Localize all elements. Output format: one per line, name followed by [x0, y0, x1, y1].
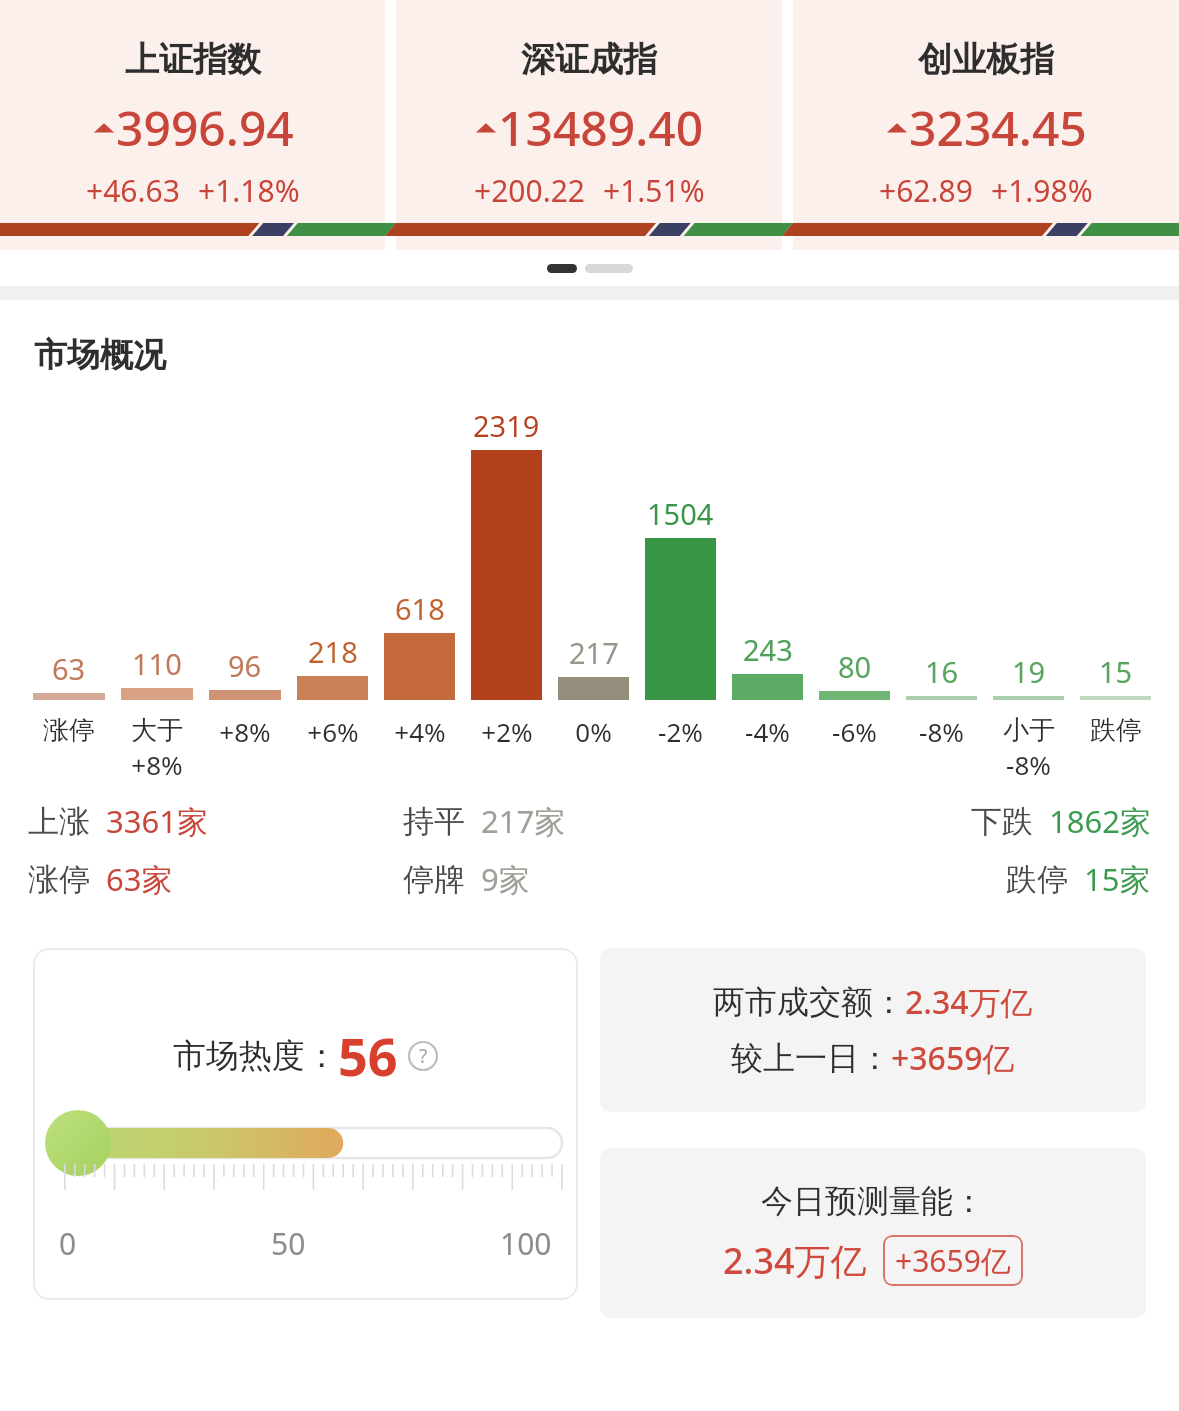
staticText: +200.22	[474, 170, 585, 211]
staticText: 两市成交额：	[713, 982, 905, 1022]
staticText: -8%	[1006, 747, 1051, 782]
staticText: -4%	[745, 714, 790, 749]
staticText: 19	[1012, 652, 1046, 691]
staticText: 下跌	[971, 802, 1033, 841]
staticText: 大于	[131, 714, 183, 747]
staticText: 96	[228, 646, 262, 685]
staticText: +6%	[307, 714, 359, 749]
button[interactable]: Page 2	[585, 264, 633, 273]
staticText: +4%	[394, 714, 446, 749]
staticText: +1.51%	[603, 170, 705, 211]
staticText: 243	[743, 630, 793, 669]
staticText: 3996.94	[116, 95, 294, 160]
staticText: -2%	[658, 714, 703, 749]
staticText: 618	[395, 589, 445, 628]
staticText: 3234.45	[909, 95, 1087, 160]
button[interactable]: 两市成交额：	[600, 948, 1146, 1112]
staticText: 1862家	[1049, 800, 1151, 842]
staticText: 217	[569, 633, 619, 672]
button[interactable]: 上证指数	[0, 0, 385, 250]
staticText: ?	[419, 1043, 428, 1069]
button[interactable]: 今日预测量能：	[600, 1148, 1146, 1318]
staticText: 63家	[106, 858, 173, 900]
staticText: 上证指数	[125, 38, 261, 81]
button[interactable]: Help	[408, 1041, 438, 1071]
staticText: 50	[271, 1223, 306, 1264]
staticText: 市场概况	[34, 334, 166, 376]
staticText: 3361家	[106, 800, 208, 842]
button[interactable]: 市场热度：	[33, 948, 578, 1300]
staticText: 小于	[1003, 714, 1055, 747]
staticText: +3659亿	[895, 1240, 1011, 1281]
staticText: 2.34万亿	[905, 980, 1033, 1024]
staticText: 市场热度：	[173, 1035, 338, 1077]
staticText: 1504	[647, 494, 714, 533]
staticText: 跌停	[1006, 860, 1068, 899]
staticText: 创业板指	[918, 38, 1054, 81]
staticText: 15	[1099, 652, 1133, 691]
staticText: +2%	[481, 714, 533, 749]
staticText: 217家	[481, 800, 566, 842]
staticText: 13489.40	[498, 95, 704, 160]
staticText: 持平	[403, 802, 465, 841]
staticText: 跌停	[1090, 714, 1142, 747]
staticText: 15家	[1084, 858, 1151, 900]
staticText: 2.34万亿	[723, 1236, 867, 1285]
button[interactable]: 深证成指	[396, 0, 782, 250]
staticText: 2319	[473, 406, 540, 445]
staticText: +8%	[131, 747, 183, 782]
staticText: 0%	[575, 714, 612, 749]
staticText: 56	[338, 1020, 398, 1091]
staticText: 16	[925, 652, 959, 691]
staticText: +1.18%	[198, 170, 300, 211]
staticText: 涨停	[43, 714, 95, 747]
staticText: -8%	[919, 714, 964, 749]
staticText: 上涨	[28, 802, 90, 841]
button[interactable]: Page 1	[547, 264, 577, 273]
staticText: 80	[838, 647, 872, 686]
staticText: +1.98%	[991, 170, 1093, 211]
staticText: +62.89	[879, 170, 973, 211]
staticText: 110	[132, 644, 182, 683]
staticText: 今日预测量能：	[761, 1181, 985, 1221]
button[interactable]: 创业板指	[793, 0, 1179, 250]
staticText: 218	[308, 632, 358, 671]
staticText: 100	[500, 1223, 552, 1264]
staticText: 涨停	[28, 860, 90, 899]
staticText: +46.63	[86, 170, 180, 211]
staticText: 9家	[481, 858, 530, 900]
staticText: 深证成指	[521, 38, 657, 81]
staticText: -6%	[832, 714, 877, 749]
staticText: +8%	[219, 714, 271, 749]
staticText: 63	[52, 649, 86, 688]
staticText: 停牌	[403, 860, 465, 899]
staticText: +3659亿	[891, 1036, 1015, 1080]
staticText: 0	[59, 1223, 77, 1264]
staticText: 较上一日：	[731, 1038, 891, 1078]
